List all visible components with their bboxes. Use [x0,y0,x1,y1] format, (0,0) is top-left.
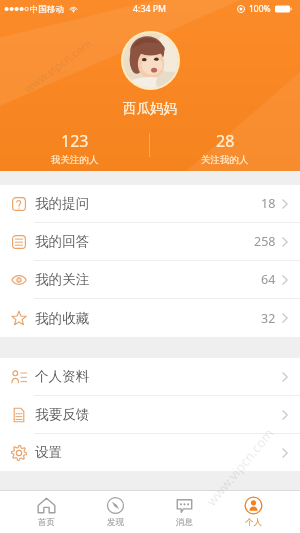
staticText: www.vipcn.com [21,35,94,96]
button[interactable]: 首页 [12,491,81,533]
staticText: www.vipcn.com [202,424,278,509]
button[interactable]: 发现 [81,491,150,533]
staticText: 个人资料 [35,368,90,385]
staticText: 18 [261,195,276,212]
staticText: 关注我的人 [201,154,249,166]
staticText: 设置 [35,444,63,461]
button[interactable]: 我要反馈 [0,396,300,434]
button[interactable]: 123 [0,130,149,166]
button[interactable]: 个人资料 [0,358,300,396]
staticText: 我的关注 [35,271,90,288]
staticText: 我的提问 [35,195,90,212]
staticText: 我关注的人 [51,154,99,166]
button[interactable]: 我的提问 [0,185,300,223]
staticText: 32 [261,310,276,327]
button[interactable]: Profile photo [121,31,180,90]
staticText: 消息 [176,517,193,528]
button[interactable]: 个人 [219,491,288,533]
staticText: 我的收藏 [35,310,90,327]
staticText: 发现 [107,517,124,528]
staticText: 123 [61,130,89,152]
staticText: 中国移动 [30,4,64,15]
staticText: 28 [216,130,235,152]
button[interactable]: 28 [150,130,300,166]
staticText: 首页 [38,517,55,528]
button[interactable]: 我的关注 [0,261,300,299]
staticText: 我要反馈 [35,406,90,423]
button[interactable]: 我的回答 [0,223,300,261]
button[interactable]: 我的收藏 [0,299,300,337]
staticText: 64 [261,271,276,288]
staticText: 4:34 PM [133,3,167,15]
button[interactable]: 消息 [150,491,219,533]
staticText: 100% [249,3,271,15]
staticText: 个人 [245,517,262,528]
staticText: 西瓜妈妈 [123,100,177,117]
staticText: 258 [254,233,276,250]
button[interactable]: 设置 [0,434,300,471]
staticText: 我的回答 [35,233,90,250]
